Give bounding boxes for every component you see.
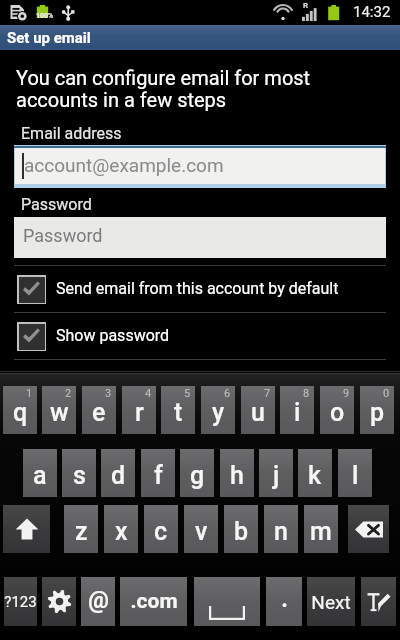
- staticText: e: [92, 398, 106, 427]
- button[interactable]: 2: [42, 386, 76, 434]
- button[interactable]: Settings: [42, 577, 76, 626]
- staticText: p: [370, 398, 385, 427]
- staticText: Next: [311, 591, 351, 613]
- staticText: c: [154, 517, 168, 546]
- staticText: f: [154, 461, 163, 490]
- staticText: accounts in a few steps: [16, 88, 227, 111]
- button[interactable]: 7: [241, 386, 275, 434]
- button[interactable]: Next: [307, 577, 355, 626]
- staticText: 7: [264, 387, 271, 400]
- staticText: 1: [26, 387, 33, 400]
- button[interactable]: x: [104, 505, 138, 553]
- staticText: 2: [65, 387, 72, 400]
- staticText: 5: [184, 387, 191, 400]
- staticText: b: [234, 517, 249, 546]
- button[interactable]: h: [220, 449, 254, 497]
- button[interactable]: z: [64, 505, 98, 553]
- button[interactable]: Show password: [0, 313, 400, 359]
- button[interactable]: 5: [161, 386, 195, 434]
- staticText: 9: [343, 387, 350, 400]
- staticText: h: [230, 461, 244, 490]
- staticText: z: [75, 517, 88, 546]
- staticText: Password: [21, 195, 92, 214]
- button[interactable]: k: [298, 449, 332, 497]
- staticText: Email address: [21, 124, 122, 143]
- staticText: Password: [23, 225, 103, 246]
- staticText: n: [274, 517, 288, 546]
- staticText: t: [174, 398, 183, 427]
- staticText: 4: [145, 387, 152, 400]
- staticText: d: [111, 461, 126, 490]
- staticText: i: [294, 398, 301, 427]
- staticText: account@example.com: [24, 154, 224, 176]
- button[interactable]: l: [338, 449, 372, 497]
- button[interactable]: Password: [14, 217, 386, 258]
- button[interactable]: .: [266, 577, 302, 626]
- button[interactable]: Send email from this account by default: [0, 266, 400, 312]
- staticText: @: [88, 587, 109, 614]
- staticText: Set up email: [7, 29, 91, 47]
- staticText: w: [50, 398, 69, 427]
- button[interactable]: b: [224, 505, 258, 553]
- button[interactable]: 1: [3, 386, 37, 434]
- button[interactable]: .com: [120, 577, 187, 626]
- staticText: You can configure email for most: [16, 66, 311, 89]
- button[interactable]: Space: [194, 577, 260, 626]
- staticText: x: [115, 517, 128, 546]
- staticText: a: [33, 461, 47, 490]
- staticText: .: [281, 586, 288, 613]
- staticText: l: [352, 461, 359, 490]
- button[interactable]: Shift: [3, 505, 50, 553]
- staticText: 3: [105, 387, 112, 400]
- staticText: .com: [130, 589, 178, 614]
- staticText: j: [273, 461, 280, 490]
- button[interactable]: 8: [280, 386, 314, 434]
- button[interactable]: a: [23, 449, 57, 497]
- staticText: y: [212, 398, 225, 427]
- staticText: g: [190, 461, 205, 490]
- button[interactable]: @: [81, 577, 115, 626]
- staticText: Send email from this account by default: [56, 279, 339, 298]
- staticText: o: [330, 398, 345, 427]
- button[interactable]: 9: [320, 386, 354, 434]
- staticText: 100%: [36, 12, 54, 20]
- staticText: s: [73, 461, 86, 490]
- button[interactable]: Delete: [348, 505, 389, 553]
- staticText: R: [303, 1, 309, 10]
- button[interactable]: g: [180, 449, 214, 497]
- button[interactable]: f: [141, 449, 175, 497]
- staticText: v: [195, 517, 208, 546]
- staticText: u: [251, 398, 265, 427]
- staticText: 14:32: [353, 3, 391, 21]
- staticText: ?123: [4, 593, 37, 611]
- button[interactable]: d: [101, 449, 135, 497]
- button[interactable]: 4: [122, 386, 156, 434]
- button[interactable]: m: [304, 505, 338, 553]
- staticText: k: [308, 461, 322, 490]
- staticText: m: [310, 517, 332, 546]
- button[interactable]: Input method: [361, 577, 396, 626]
- button[interactable]: account@example.com: [14, 145, 386, 188]
- staticText: 6: [224, 387, 231, 400]
- staticText: q: [13, 398, 28, 427]
- staticText: 8: [303, 387, 310, 400]
- button[interactable]: c: [144, 505, 178, 553]
- button[interactable]: 6: [201, 386, 235, 434]
- button[interactable]: j: [259, 449, 293, 497]
- button[interactable]: n: [264, 505, 298, 553]
- staticText: Show password: [56, 326, 170, 345]
- staticText: 0: [383, 387, 390, 400]
- button[interactable]: ?123: [4, 577, 37, 626]
- button[interactable]: 0: [360, 386, 394, 434]
- button[interactable]: 3: [82, 386, 116, 434]
- button[interactable]: v: [184, 505, 218, 553]
- staticText: r: [135, 398, 144, 427]
- button[interactable]: s: [62, 449, 96, 497]
